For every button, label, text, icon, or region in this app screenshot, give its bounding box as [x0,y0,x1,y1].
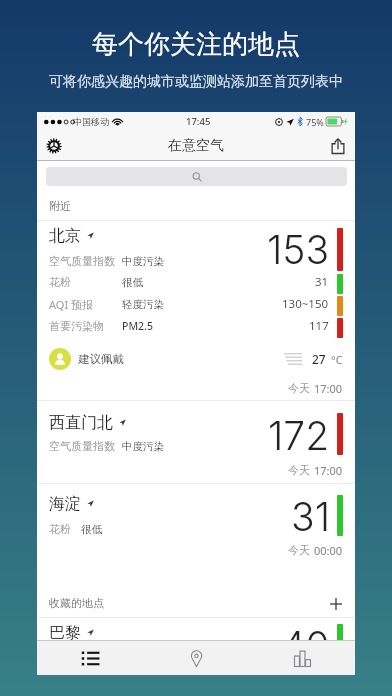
staticText: 17:00 [314,463,343,478]
staticText: 建议佩戴 [78,352,124,366]
staticText: PM2.5 [122,319,153,333]
staticText: 每个你关注的地点 [92,28,300,61]
staticText: 00:00 [314,543,343,558]
staticText: 中度污染 [122,255,164,268]
staticText: 海淀 [49,494,81,514]
staticText: °C [331,352,343,367]
button[interactable]: 附近 [49,197,343,215]
staticText: 中国移动 [73,116,109,127]
staticText: 空气质量指数 [49,254,115,268]
staticText: 17:00 [314,381,343,396]
staticText: 北京 [49,226,81,246]
button[interactable]: 巴黎 [49,622,94,644]
staticText: 在意空气 [168,137,224,155]
staticText: 40 [281,622,330,669]
button[interactable]: 收藏的地点 [49,594,343,612]
button[interactable]: Share [327,135,349,157]
staticText: 31 [315,274,329,290]
button[interactable]: 西直门北 [49,412,126,434]
staticText: 花粉 [49,522,71,536]
button[interactable]: Charts [249,641,355,675]
button[interactable]: List [37,641,143,675]
staticText: 花粉 [49,275,71,289]
button[interactable]: 北京 [49,225,94,247]
staticText: 153 [267,226,330,273]
staticText: 130~150 [282,296,329,312]
staticText: 中度污染 [122,440,164,453]
staticText: 很低 [122,276,143,289]
staticText: 今天 [288,543,310,557]
staticText: 可将你感兴趣的城市或监测站添加至首页列表中 [49,73,343,91]
staticText: 巴黎 [49,623,81,643]
staticText: 今天 [288,463,310,477]
staticText: 收藏的地点 [49,596,104,610]
staticText: 今天 [288,381,310,395]
staticText: 75% [306,116,324,128]
staticText: 西直门北 [49,413,113,433]
staticText: 附近 [49,199,71,213]
staticText: 空气质量指数 [49,439,115,453]
button[interactable]: Search [46,167,347,186]
button[interactable]: Map [143,641,249,675]
staticText: 轻度污染 [122,298,164,311]
staticText: 很低 [81,523,102,536]
staticText: 117 [309,318,329,334]
staticText: 27 [312,351,326,367]
staticText: 172 [268,412,330,459]
button[interactable]: 海淀 [49,493,94,515]
staticText: AQI 预报 [49,297,93,312]
staticText: 31 [291,493,330,540]
staticText: 17:45 [186,115,211,128]
staticText: 首要污染物 [49,319,104,333]
button[interactable]: Settings [43,135,65,157]
